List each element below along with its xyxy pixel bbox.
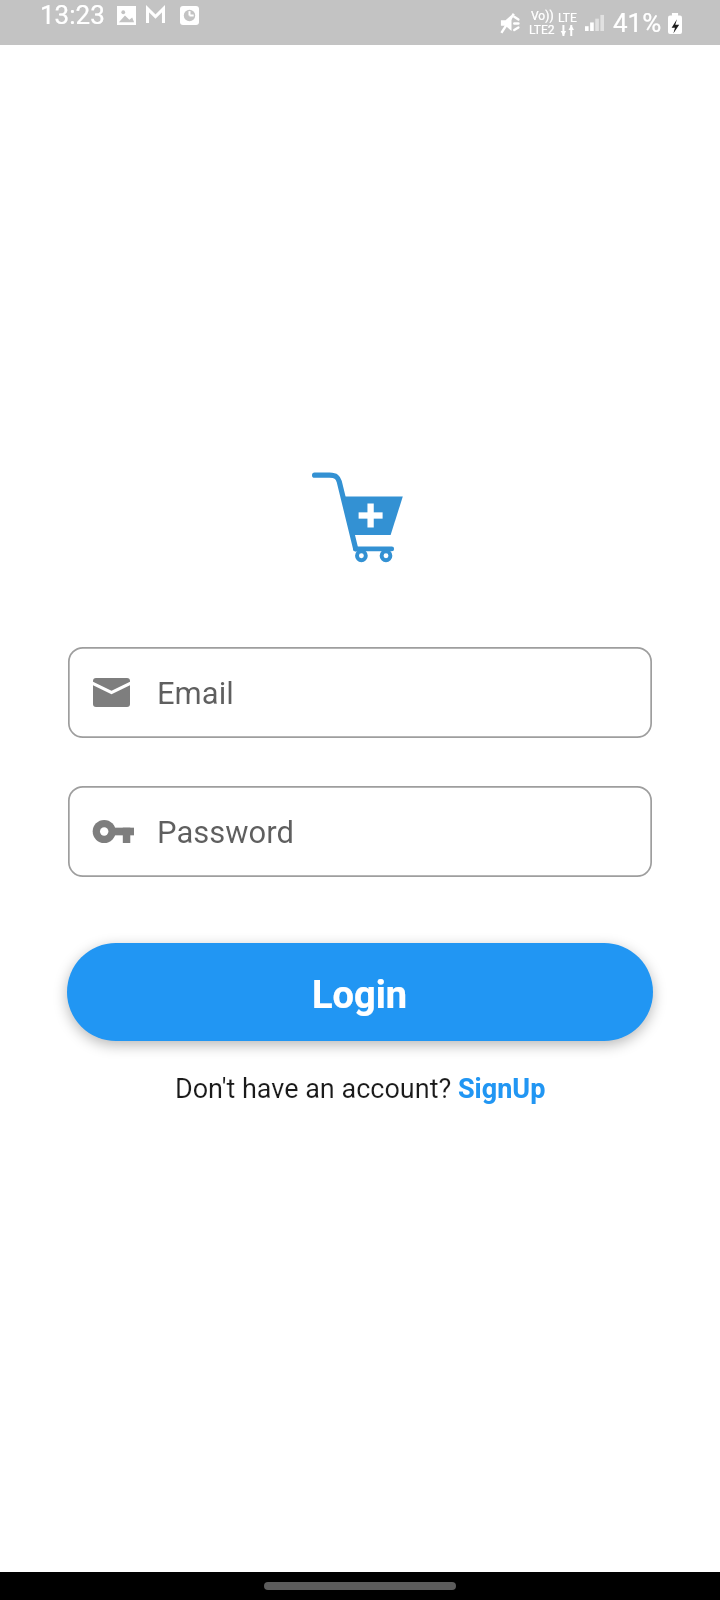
staticText: SignUp [458,1073,546,1105]
staticText: Vo)) [531,9,554,23]
staticText: LTE2 [529,23,555,37]
staticText: 13:23 [40,0,105,30]
staticText: Login [312,973,408,1018]
staticText: Don't have an account? [175,1073,458,1105]
staticText: Email [157,675,234,711]
button[interactable]: Email field [68,647,652,738]
other: Home gesture [264,1582,456,1590]
staticText: 41% [613,8,662,38]
button[interactable]: Login [67,943,653,1041]
button[interactable]: SignUp [458,1073,546,1105]
button[interactable]: Password field [68,786,652,877]
staticText: Password [157,814,294,850]
staticText: LTE [558,11,577,25]
